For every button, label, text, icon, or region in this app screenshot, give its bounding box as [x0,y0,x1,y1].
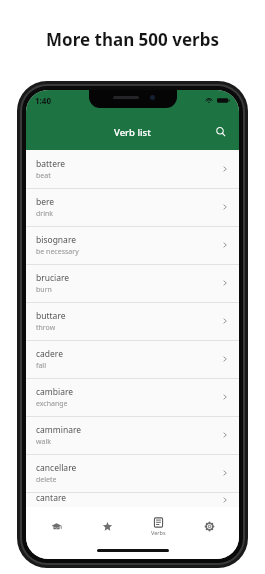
staticText: fall [36,361,46,371]
staticText: bere [36,196,55,208]
staticText: Verbs [151,529,166,536]
staticText: Verb list [114,126,151,139]
button[interactable]: Search [209,120,233,144]
button[interactable]: bere [26,188,239,226]
staticText: beat [36,171,51,181]
staticText: camminare [36,424,82,436]
staticText: throw [36,323,56,333]
button[interactable]: Settings [188,507,230,545]
staticText: cancellare [36,462,77,474]
button[interactable]: battere [26,150,239,188]
button[interactable]: buttare [26,302,239,340]
staticText: delete [36,475,57,485]
button[interactable]: cancellare [26,454,239,492]
staticText: cadere [36,348,64,360]
staticText: cambiare [36,386,74,398]
button[interactable]: cantare [26,492,239,507]
button[interactable]: camminare [26,416,239,454]
staticText: bisognare [36,234,77,246]
button[interactable]: cambiare [26,378,239,416]
staticText: bruciare [36,272,70,284]
staticText: battere [36,158,66,170]
staticText: cantare [36,492,67,504]
staticText: exchange [36,399,68,409]
staticText: buttare [36,310,66,322]
button[interactable]: Verbs [137,507,179,545]
staticText: drink [36,209,54,219]
staticText: More than 500 verbs [46,28,219,51]
staticText: 1:40 [35,95,51,106]
button[interactable]: bisognare [26,226,239,264]
staticText: burn [36,285,52,295]
button[interactable]: Learn [35,507,77,545]
button[interactable]: Favourites [86,507,128,545]
staticText: be necessary [36,247,79,257]
staticText: walk [36,437,51,447]
button[interactable]: bruciare [26,264,239,302]
button[interactable]: cadere [26,340,239,378]
